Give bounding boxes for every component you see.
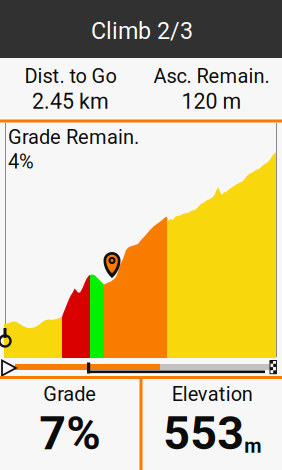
staticText: 120 m [181,89,241,114]
staticText: Grade [43,382,96,406]
staticText: Elevation [172,382,253,406]
button[interactable]: Climb 2/3 [0,0,282,58]
staticText: Dist. to Go [24,64,116,88]
staticText: 2.45 km [32,89,109,114]
staticText: Climb 2/3 [91,17,193,45]
staticText: 7% [39,406,100,461]
staticText: Asc. Remain. [153,64,269,88]
staticText: 553 [163,406,244,461]
staticText: 4% [8,150,34,173]
staticText: m [244,434,261,457]
staticText: Grade Remain. [8,125,139,149]
